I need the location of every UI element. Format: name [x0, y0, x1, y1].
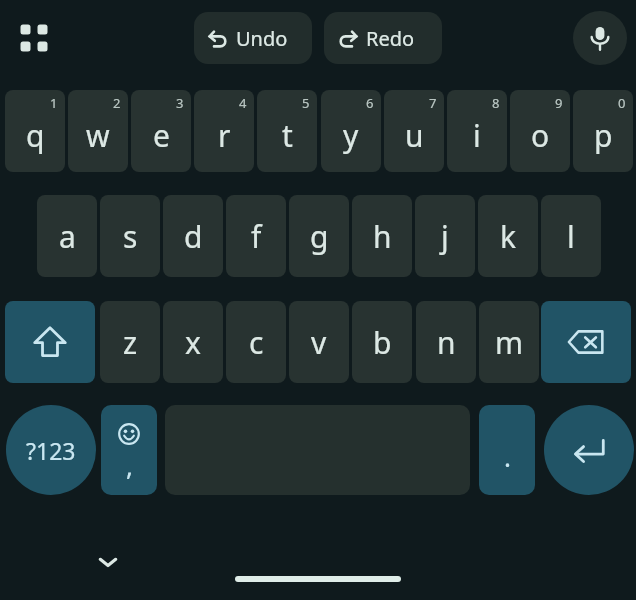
button[interactable]: 1 — [5, 90, 65, 172]
staticText: s — [123, 216, 138, 257]
staticText: k — [500, 216, 517, 257]
button[interactable]: 6 — [321, 90, 381, 172]
button[interactable]: ?123 — [6, 405, 96, 495]
button[interactable]: 3 — [131, 90, 191, 172]
button[interactable]: 9 — [510, 90, 570, 172]
button[interactable]: l — [541, 195, 601, 277]
button[interactable]: 2 — [68, 90, 128, 172]
button[interactable]: n — [416, 301, 476, 383]
staticText: a — [59, 216, 76, 257]
button[interactable]: f — [226, 195, 286, 277]
button[interactable]: . — [479, 405, 535, 495]
staticText: q — [26, 115, 45, 156]
staticText: g — [310, 216, 329, 257]
staticText: Undo — [236, 25, 288, 52]
button[interactable]: z — [100, 301, 160, 383]
button[interactable]: Emoji — [101, 405, 157, 495]
button[interactable]: s — [100, 195, 160, 277]
button[interactable]: g — [289, 195, 349, 277]
staticText: ?123 — [26, 435, 76, 466]
staticText: 1 — [50, 94, 58, 112]
staticText: j — [441, 216, 449, 257]
staticText: 9 — [555, 94, 563, 112]
button[interactable]: k — [478, 195, 538, 277]
staticText: y — [343, 115, 359, 156]
staticText: e — [153, 115, 170, 156]
button[interactable]: v — [289, 301, 349, 383]
button[interactable]: j — [415, 195, 475, 277]
staticText: 0 — [618, 94, 626, 112]
button[interactable]: Redo — [324, 12, 442, 64]
staticText: 2 — [113, 94, 121, 112]
button[interactable]: h — [352, 195, 412, 277]
staticText: 5 — [302, 94, 310, 112]
staticText: 6 — [366, 94, 374, 112]
staticText: v — [311, 322, 327, 363]
staticText: r — [218, 115, 231, 156]
staticText: o — [531, 115, 550, 156]
button[interactable]: d — [163, 195, 223, 277]
staticText: 3 — [176, 94, 184, 112]
button[interactable]: 5 — [257, 90, 317, 172]
staticText: u — [405, 115, 424, 156]
staticText: l — [567, 216, 575, 257]
button[interactable]: b — [352, 301, 412, 383]
button[interactable]: 0 — [573, 90, 633, 172]
button[interactable]: Backspace — [541, 301, 631, 383]
staticText: 4 — [239, 94, 247, 112]
staticText: n — [437, 322, 456, 363]
button[interactable]: Shift — [5, 301, 95, 383]
staticText: i — [473, 115, 481, 156]
staticText: b — [373, 322, 392, 363]
staticText: 7 — [429, 94, 437, 112]
staticText: p — [594, 115, 613, 156]
staticText: w — [86, 115, 110, 156]
button[interactable]: c — [226, 301, 286, 383]
staticText: 8 — [492, 94, 500, 112]
staticText: m — [495, 322, 524, 363]
staticText: , — [126, 448, 133, 483]
staticText: . — [504, 439, 511, 474]
staticText: d — [184, 216, 203, 257]
button[interactable]: Hide keyboard — [84, 538, 132, 586]
button[interactable]: 4 — [194, 90, 254, 172]
button[interactable]: a — [37, 195, 97, 277]
button[interactable]: Toolbar menu — [10, 14, 58, 62]
staticText: c — [249, 322, 264, 363]
button[interactable]: 7 — [384, 90, 444, 172]
staticText: f — [251, 216, 262, 257]
staticText: x — [185, 322, 201, 363]
button[interactable]: 8 — [447, 90, 507, 172]
staticText: z — [123, 322, 138, 363]
staticText: h — [373, 216, 392, 257]
button[interactable]: Voice input — [573, 11, 627, 65]
button[interactable]: x — [163, 301, 223, 383]
staticText: Redo — [366, 25, 415, 52]
staticText: t — [282, 115, 293, 156]
button[interactable]: m — [479, 301, 539, 383]
button[interactable]: Enter — [544, 405, 634, 495]
button[interactable]: Undo — [194, 12, 312, 64]
